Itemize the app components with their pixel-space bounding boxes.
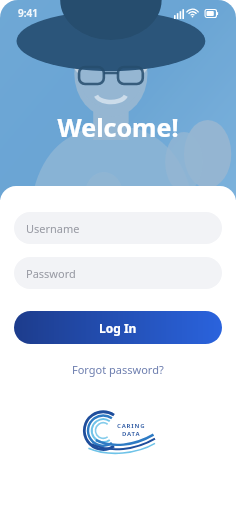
other: Caring Data logo bbox=[81, 413, 155, 453]
button[interactable]: Forgot password? bbox=[14, 362, 222, 377]
staticText: Forgot password? bbox=[72, 362, 164, 377]
staticText: DATA bbox=[122, 430, 141, 438]
button[interactable]: Log In bbox=[14, 311, 222, 344]
staticText: 9:41 bbox=[18, 6, 38, 20]
button[interactable]: Password bbox=[14, 257, 222, 289]
staticText: Welcome! bbox=[0, 110, 236, 144]
staticText: CARING bbox=[117, 422, 146, 430]
button[interactable]: Username bbox=[14, 212, 222, 244]
staticText: Log In bbox=[99, 320, 137, 336]
staticText: Username bbox=[26, 221, 80, 236]
staticText: Password bbox=[26, 266, 76, 281]
